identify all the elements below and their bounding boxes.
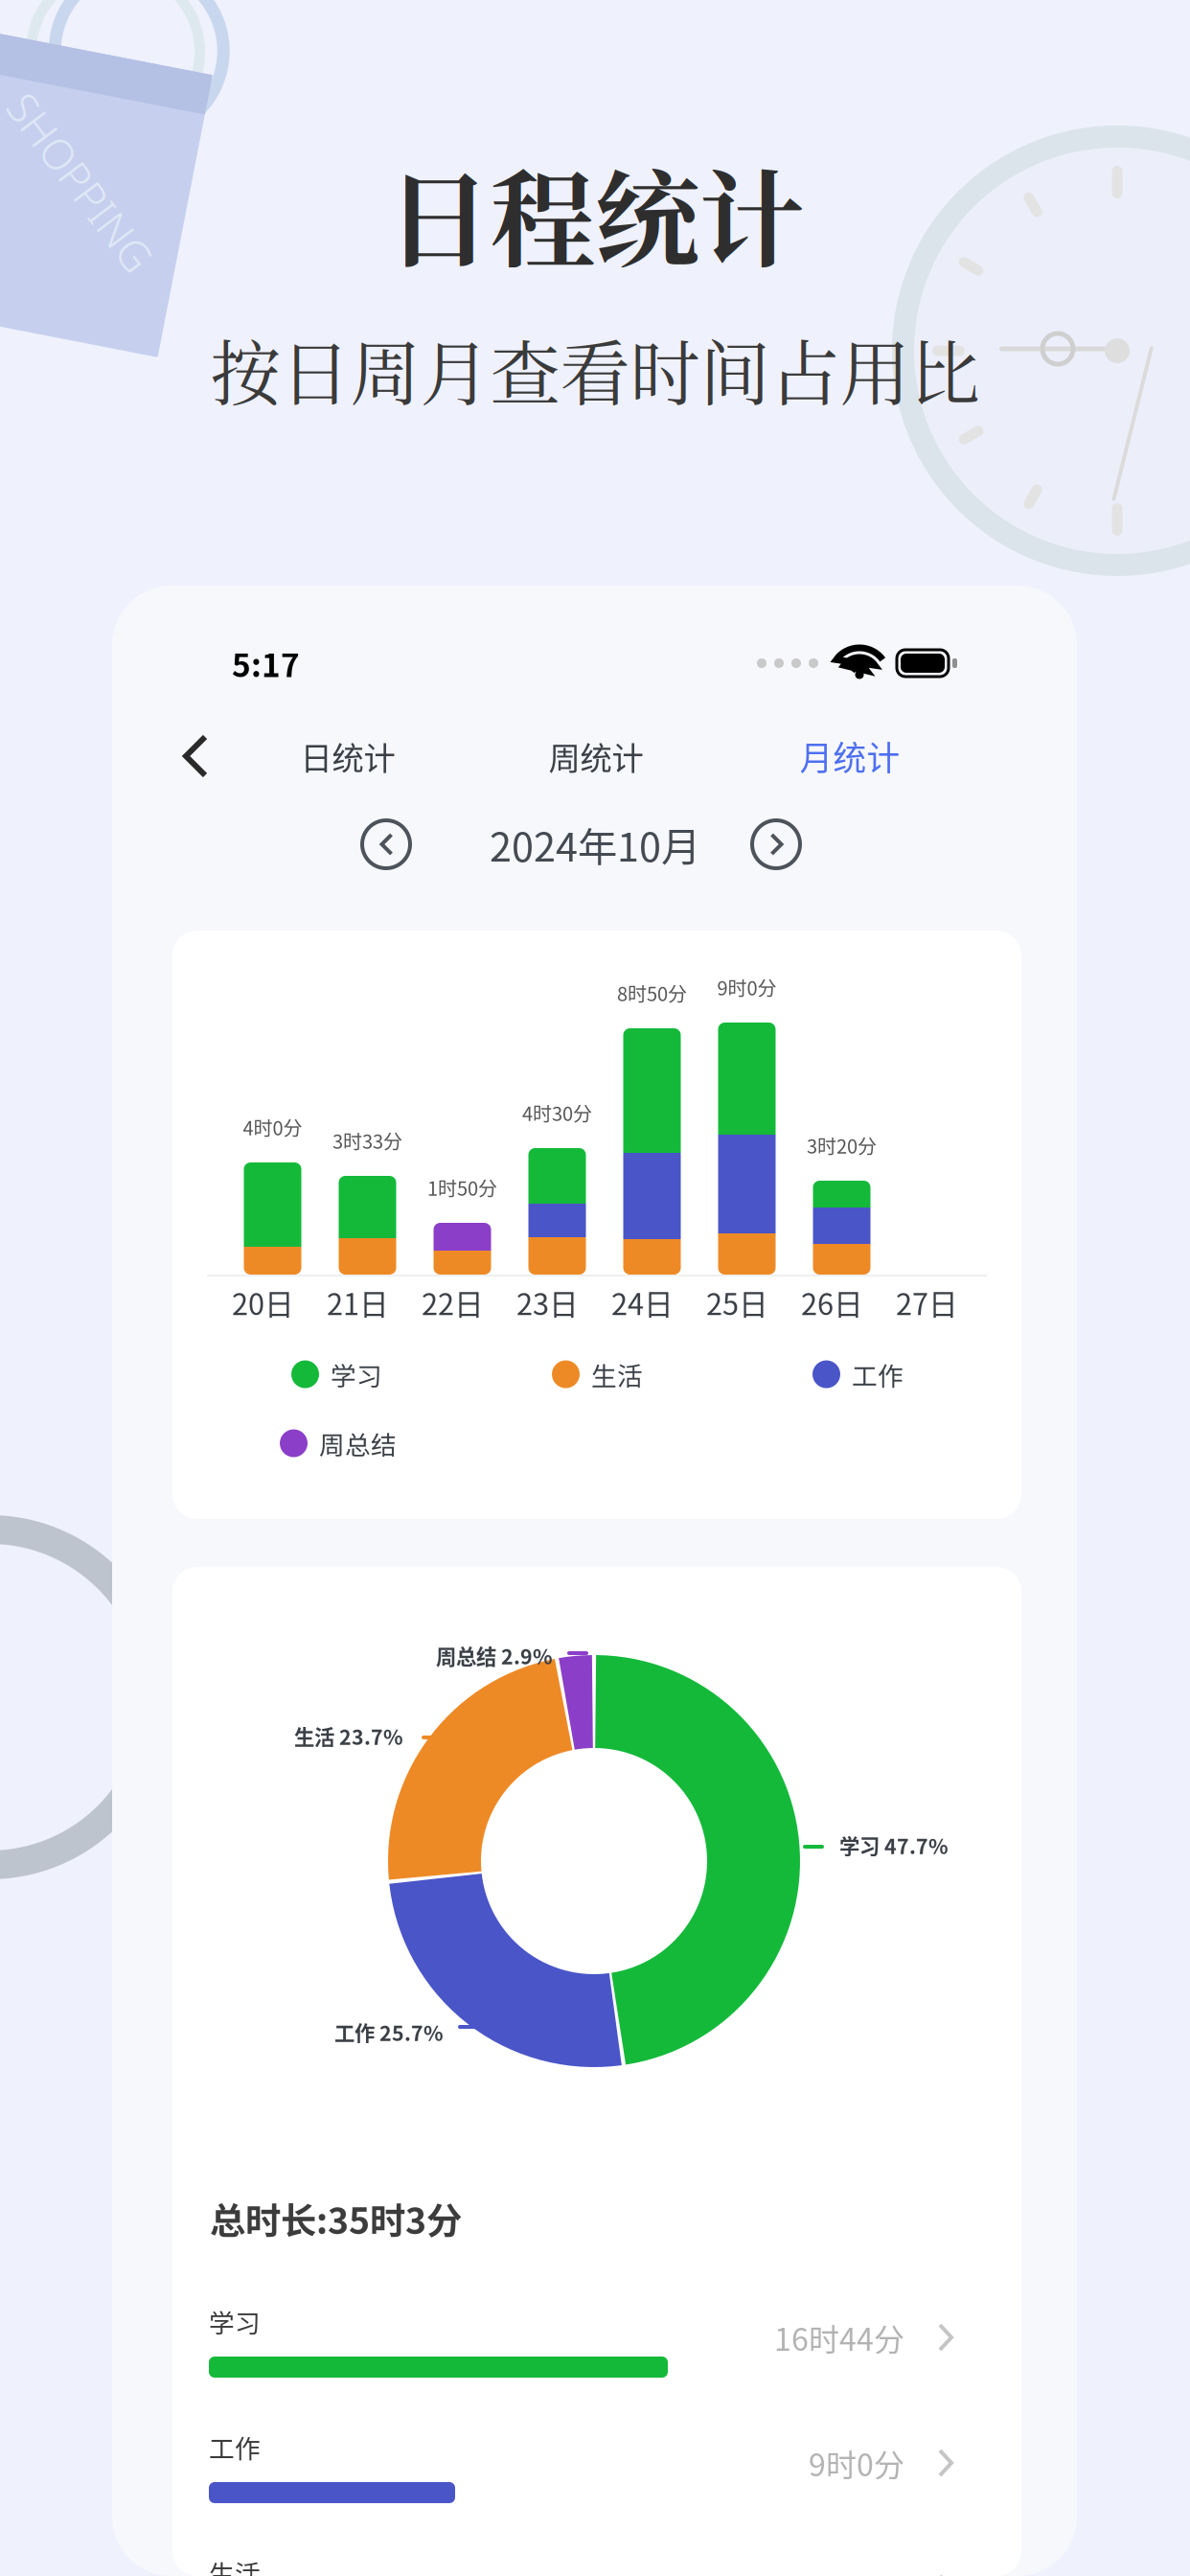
button[interactable]: 生活 — [172, 2554, 1021, 2576]
staticText: 8时50分 — [617, 979, 687, 1007]
staticText: 工作 25.7% — [334, 2017, 444, 2047]
staticText: 3时20分 — [807, 1131, 877, 1159]
staticText: 按日周月查看时间占用比 — [210, 318, 980, 419]
button[interactable]: 返回 — [160, 712, 231, 800]
staticText: 1时50分 — [427, 1173, 497, 1201]
staticText: 日统计 — [300, 733, 395, 779]
staticText: 9时0分 — [717, 973, 777, 1001]
staticText: 生活 — [591, 1356, 643, 1393]
staticText: 21日 — [327, 1281, 389, 1324]
staticText: 学习 47.7% — [839, 1830, 949, 1860]
staticText: 总时长:35时3分 — [210, 2193, 462, 2245]
staticText: 学习 — [209, 2303, 261, 2340]
button[interactable]: 周统计 — [515, 712, 677, 800]
staticText: 工作 — [209, 2428, 261, 2465]
staticText: 23日 — [516, 1281, 579, 1324]
staticText: 26日 — [801, 1281, 863, 1324]
staticText: 20日 — [232, 1281, 294, 1324]
staticText: 16时44分 — [774, 2315, 904, 2360]
button[interactable]: 日统计 — [266, 712, 429, 800]
staticText: 3时33分 — [332, 1127, 402, 1154]
staticText: SHOPPING — [0, 161, 180, 218]
button[interactable]: 学习 — [172, 2303, 1021, 2408]
staticText: 周统计 — [549, 733, 643, 779]
staticText: 25日 — [706, 1281, 768, 1324]
staticText: 日程统计 — [386, 137, 804, 288]
button[interactable]: 上个月 — [350, 808, 423, 881]
staticText: 2024年10月 — [490, 816, 700, 873]
staticText: 22日 — [422, 1281, 484, 1324]
staticText: 工作 — [852, 1356, 904, 1393]
button[interactable]: 月统计 — [768, 712, 931, 800]
staticText: 27日 — [896, 1281, 958, 1324]
button[interactable]: 工作 — [172, 2428, 1021, 2534]
staticText: 24日 — [611, 1281, 674, 1324]
staticText: 周总结 2.9% — [436, 1641, 553, 1670]
staticText: 4时30分 — [522, 1099, 592, 1127]
staticText: 4时0分 — [243, 1113, 302, 1141]
button[interactable]: 下个月 — [740, 808, 812, 881]
staticText: 生活 23.7% — [294, 1721, 403, 1751]
staticText: 月统计 — [800, 732, 900, 780]
staticText: 9时0分 — [809, 2441, 904, 2485]
staticText: 5:17 — [232, 640, 300, 686]
staticText: 学习 — [331, 1356, 382, 1393]
staticText: 周总结 — [319, 1425, 397, 1462]
staticText: 生活 — [209, 2554, 261, 2576]
